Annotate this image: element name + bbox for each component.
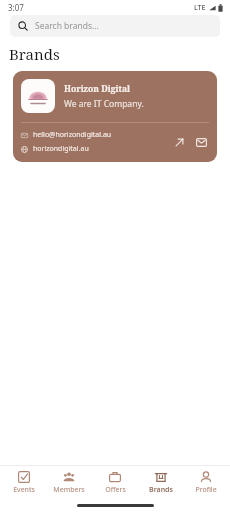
staticText: horizondigital.au xyxy=(33,144,89,154)
staticText: hello@horizondigital.au xyxy=(33,130,112,140)
staticText: Profile xyxy=(195,485,217,495)
staticText: 3:07 xyxy=(8,2,24,13)
staticText: Members xyxy=(53,485,85,495)
staticText: Events xyxy=(13,485,35,495)
button[interactable]: Members xyxy=(47,469,91,497)
staticText: We are IT Company. xyxy=(64,98,144,110)
staticText: LTE xyxy=(194,3,206,13)
button[interactable]: Horizon Digital xyxy=(13,71,217,162)
button[interactable]: Offers xyxy=(93,469,137,497)
button[interactable]: Events xyxy=(2,469,46,497)
button[interactable]: Open website xyxy=(171,134,187,150)
staticText: Brands xyxy=(9,44,60,64)
button[interactable]: Brands xyxy=(139,469,183,497)
staticText: Brands xyxy=(149,485,173,495)
staticText: Horizon Digital xyxy=(64,83,131,95)
staticText: Offers xyxy=(105,485,126,495)
button[interactable]: Send email xyxy=(193,134,209,150)
button[interactable]: Search brands... xyxy=(10,15,220,37)
staticText: Search brands... xyxy=(35,20,99,32)
button[interactable]: Profile xyxy=(184,469,228,497)
